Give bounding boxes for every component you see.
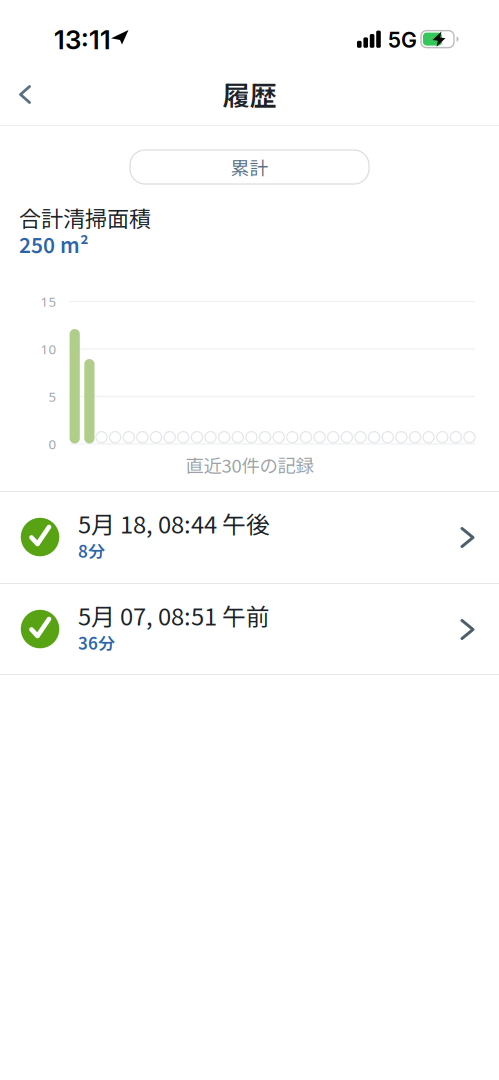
staticText: 10 (40, 340, 56, 358)
staticText: 累計 (230, 153, 268, 180)
staticText: 5 (48, 388, 56, 405)
staticText: 直近30件の記録 (185, 451, 313, 478)
staticText: 8分 (78, 538, 105, 562)
staticText: 5G (388, 27, 417, 53)
staticText: 0 (48, 435, 56, 453)
staticText: 36分 (78, 630, 115, 654)
button[interactable]: 5月 18, 08:44 午後 (0, 492, 499, 583)
staticText: 履歴 (222, 74, 276, 114)
staticText: 5月 07, 08:51 午前 (78, 598, 270, 632)
staticText: 5月 18, 08:44 午後 (78, 506, 270, 540)
button[interactable]: 5月 07, 08:51 午前 (0, 584, 499, 675)
staticText: 15 (40, 293, 56, 310)
staticText: 13:11 (54, 24, 111, 55)
staticText: 合計清掃面積 (19, 201, 151, 233)
staticText: 250 m² (19, 229, 89, 259)
button[interactable] (3, 72, 47, 116)
button[interactable]: 累計 (130, 150, 369, 184)
